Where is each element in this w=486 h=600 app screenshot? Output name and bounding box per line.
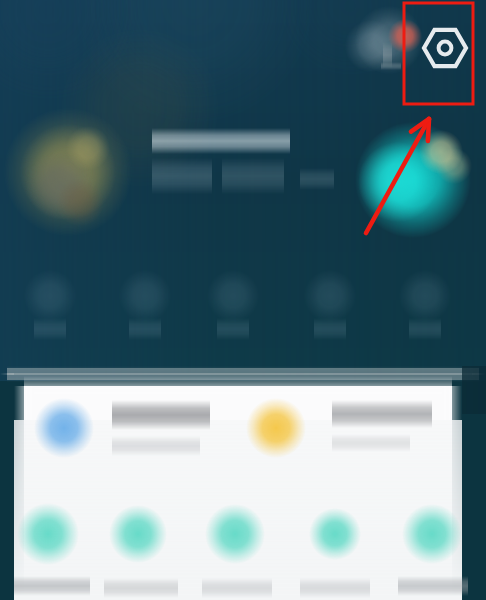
button[interactable]: Quick action 5 [385, 266, 465, 342]
button[interactable]: Action [358, 142, 468, 218]
button[interactable]: Promotion 2 [240, 386, 458, 470]
button[interactable]: Service 5 [388, 498, 476, 596]
button[interactable]: Profile [18, 122, 118, 222]
button[interactable]: Quick action 4 [290, 266, 370, 342]
button[interactable]: Service 1 [4, 498, 92, 596]
button[interactable]: Promotion 1 [20, 386, 236, 470]
button[interactable]: Quick action 3 [193, 266, 273, 342]
button[interactable]: Service 3 [191, 498, 279, 596]
button[interactable]: Settings [424, 27, 466, 69]
button[interactable]: Quick action 1 [10, 266, 90, 342]
button[interactable]: Quick action 2 [105, 266, 185, 342]
button[interactable]: Service 4 [291, 498, 379, 596]
button[interactable]: Service 2 [94, 498, 182, 596]
button[interactable]: Notifications [372, 26, 416, 70]
